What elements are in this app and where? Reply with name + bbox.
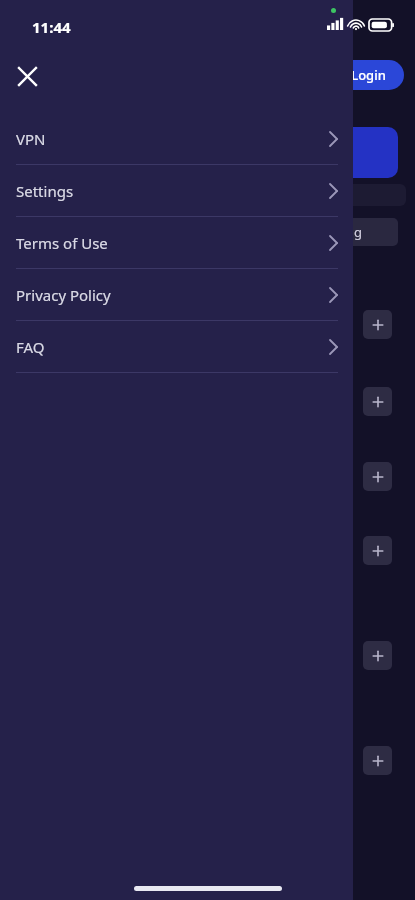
button[interactable]: Privacy Policy xyxy=(0,269,353,320)
staticText: FAQ xyxy=(16,337,329,357)
staticText: Login xyxy=(351,66,386,84)
button[interactable] xyxy=(300,127,398,178)
staticText: Terms of Use xyxy=(16,233,329,253)
button[interactable]: Terms of Use xyxy=(0,217,353,268)
button[interactable]: Login xyxy=(332,60,404,90)
button[interactable]: Add xyxy=(363,536,392,565)
button[interactable]: Settings xyxy=(0,165,353,216)
button[interactable]: Close xyxy=(6,55,48,97)
button[interactable]: Add xyxy=(363,310,392,339)
staticText: VPN xyxy=(16,129,329,149)
button[interactable]: Add xyxy=(363,746,392,775)
staticText: ting xyxy=(338,223,363,241)
button[interactable]: Add xyxy=(363,641,392,670)
staticText: Settings xyxy=(16,181,329,201)
button[interactable]: VPN xyxy=(0,113,353,164)
button[interactable]: FAQ xyxy=(0,321,353,372)
button[interactable]: Add xyxy=(363,462,392,491)
staticText: 11:44 xyxy=(32,17,71,37)
button[interactable]: ting xyxy=(330,218,398,246)
staticText: Privacy Policy xyxy=(16,285,329,305)
button[interactable]: Add xyxy=(363,387,392,416)
